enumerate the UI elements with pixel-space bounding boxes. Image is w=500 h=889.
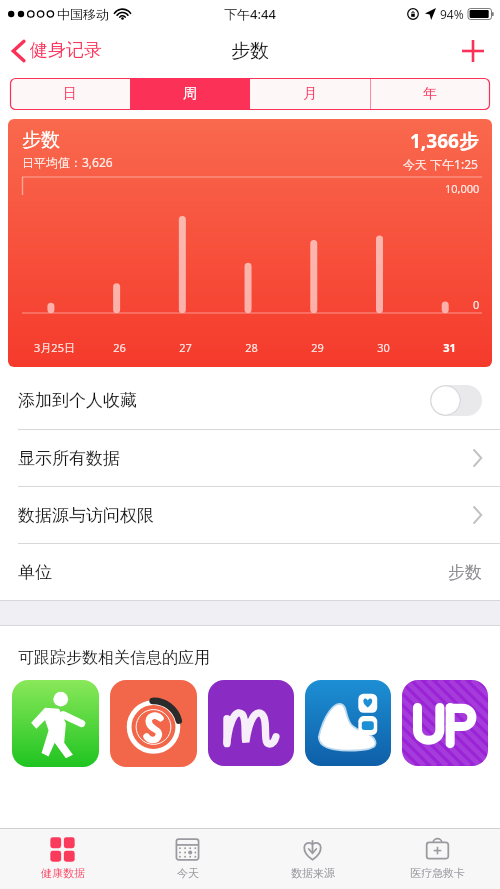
staticText: 26 xyxy=(113,340,126,355)
staticText: 0 xyxy=(473,297,480,312)
staticText: 27 xyxy=(179,340,192,355)
staticText: 28 xyxy=(245,340,258,355)
staticText: 周 xyxy=(183,85,197,103)
button[interactable]: App xyxy=(305,680,391,766)
staticText: 1,366步 xyxy=(410,128,478,154)
button[interactable]: 添加到个人收藏 xyxy=(0,371,500,429)
staticText: 添加到个人收藏 xyxy=(18,390,137,411)
staticText: 健身记录 xyxy=(30,39,102,62)
button[interactable]: 单位 xyxy=(0,544,500,600)
button[interactable]: 日 xyxy=(10,78,130,110)
staticText: 健康数据 xyxy=(41,866,85,880)
staticText: 数据源与访问权限 xyxy=(18,505,154,526)
staticText: 下午4:44 xyxy=(224,5,276,23)
staticText: 医疗急救卡 xyxy=(410,866,465,880)
staticText: 29 xyxy=(311,340,324,355)
staticText: 月 xyxy=(303,85,317,103)
staticText: 今天 xyxy=(177,866,199,880)
button[interactable]: 显示所有数据 xyxy=(0,430,500,486)
staticText: 步数 xyxy=(22,128,60,152)
button[interactable]: 月 xyxy=(250,78,370,110)
staticText: 日 xyxy=(63,85,77,103)
staticText: 步数 xyxy=(231,39,269,63)
staticText: 今天 下午1:25 xyxy=(403,156,478,172)
staticText: 94% xyxy=(440,6,464,22)
staticText: 3月25日 xyxy=(34,340,75,355)
staticText: 显示所有数据 xyxy=(18,448,120,469)
staticText: 31 xyxy=(443,340,456,355)
staticText: 日平均值：3,626 xyxy=(22,154,113,170)
button[interactable]: App xyxy=(208,680,294,766)
staticText: 中国移动 xyxy=(57,6,109,22)
button[interactable]: 健康数据 xyxy=(0,829,125,889)
staticText: 年 xyxy=(423,85,437,103)
button[interactable]: 健身记录 xyxy=(0,33,112,68)
button[interactable]: 医疗急救卡 xyxy=(375,829,500,889)
staticText: 单位 xyxy=(18,562,52,583)
button[interactable]: 今天 xyxy=(125,829,250,889)
staticText: 数据来源 xyxy=(291,866,335,880)
button[interactable]: 周 xyxy=(130,78,250,110)
button[interactable]: 年 xyxy=(370,78,490,110)
staticText: 30 xyxy=(377,340,390,355)
staticText: 可跟踪步数相关信息的应用 xyxy=(18,648,210,668)
button[interactable]: App xyxy=(402,680,488,766)
button[interactable]: 数据来源 xyxy=(250,829,375,889)
staticText: 步数 xyxy=(448,562,482,583)
button[interactable]: App xyxy=(110,680,197,767)
staticText: 10,000 xyxy=(445,181,480,196)
button[interactable]: App xyxy=(12,680,99,767)
button[interactable]: Add data xyxy=(446,30,500,72)
button[interactable]: 数据源与访问权限 xyxy=(0,487,500,543)
